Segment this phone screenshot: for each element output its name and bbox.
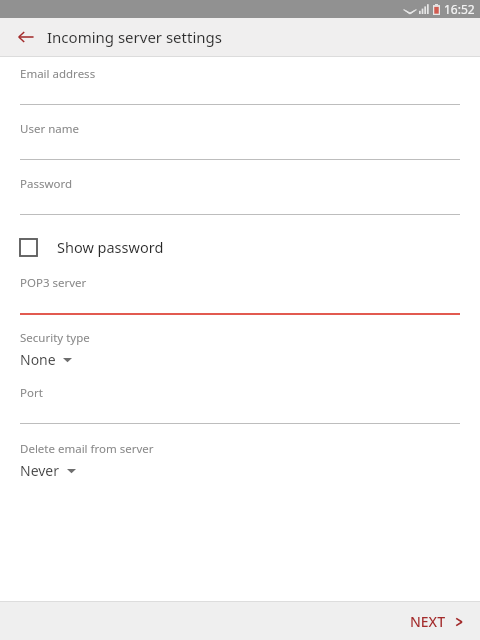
- staticText: Delete email from server: [20, 441, 154, 457]
- button[interactable]: Email address: [0, 66, 480, 105]
- staticText: 16:52: [444, 1, 475, 17]
- button[interactable]: POP3 server: [0, 275, 480, 315]
- staticText: Security type: [20, 330, 90, 346]
- button[interactable]: Port: [0, 385, 480, 424]
- button[interactable]: Show password: [0, 233, 480, 261]
- button[interactable]: Security type: [0, 330, 480, 369]
- staticText: None: [20, 350, 56, 369]
- staticText: POP3 server: [20, 275, 87, 291]
- staticText: Port: [20, 385, 43, 401]
- button[interactable]: Password: [0, 176, 480, 215]
- button[interactable]: Delete email from server: [0, 441, 480, 480]
- button[interactable]: NEXT: [393, 604, 480, 639]
- button[interactable]: Back: [8, 19, 44, 55]
- staticText: NEXT: [409, 612, 445, 631]
- staticText: Incoming server settings: [47, 27, 222, 47]
- staticText: Show password: [57, 237, 164, 257]
- button[interactable]: User name: [0, 121, 480, 160]
- staticText: Never: [20, 461, 60, 480]
- staticText: Email address: [20, 66, 96, 82]
- staticText: User name: [20, 121, 79, 137]
- staticText: Password: [20, 176, 73, 192]
